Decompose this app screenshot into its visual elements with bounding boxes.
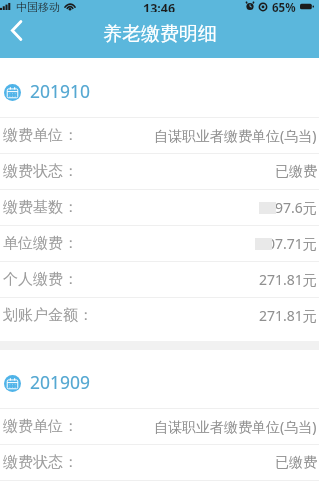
button[interactable]: 缴费状态： [0, 154, 319, 189]
staticText: 13:46 [143, 0, 176, 12]
button[interactable]: 201910 [0, 58, 319, 117]
staticText: 缴费基数： [3, 198, 78, 217]
staticText: 97.6元 [275, 198, 317, 217]
staticText: 07.71元 [267, 234, 317, 253]
staticText: 缴费状态： [3, 453, 78, 472]
button[interactable]: 个人缴费： [0, 262, 319, 297]
staticText: 自谋职业者缴费单位(乌当) [154, 126, 317, 145]
button[interactable]: 201909 [0, 350, 319, 408]
button[interactable]: 划账户金额： [0, 298, 319, 333]
staticText: 养老缴费明细 [103, 22, 217, 46]
button[interactable]: 缴费单位： [0, 118, 319, 153]
staticText: 个人缴费： [3, 270, 78, 289]
staticText: 单位缴费： [3, 234, 78, 253]
button[interactable]: 缴费基数： [0, 190, 319, 225]
button[interactable]: 单位缴费： [0, 226, 319, 261]
staticText: 划账户金额： [3, 306, 93, 325]
staticText: 已缴费 [275, 163, 317, 181]
staticText: 已缴费 [275, 454, 317, 472]
staticText: 271.81元 [259, 306, 317, 325]
staticText: 缴费单位： [3, 417, 78, 436]
staticText: 缴费单位： [3, 126, 78, 145]
staticText: 201909 [30, 370, 91, 394]
button[interactable]: Back [0, 14, 32, 46]
staticText: 201910 [30, 79, 91, 103]
staticText: 中国移动 [16, 0, 60, 12]
button[interactable]: 缴费单位： [0, 409, 319, 444]
staticText: 271.81元 [259, 270, 317, 289]
button[interactable]: 缴费状态： [0, 445, 319, 480]
staticText: 自谋职业者缴费单位(乌当) [154, 417, 317, 436]
staticText: 65% [272, 0, 296, 12]
staticText: 缴费状态： [3, 162, 78, 181]
